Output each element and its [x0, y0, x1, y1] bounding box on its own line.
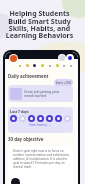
- staticText: View history ⌄: [29, 123, 52, 127]
- staticText: Helping Students Build Smart Study Skill…: [0, 9, 82, 40]
- staticText: 30 day objective: [8, 136, 44, 142]
- button[interactable]: Earn +100: [54, 79, 73, 86]
- button[interactable]: [37, 115, 44, 122]
- staticText: Earn +100: [56, 81, 71, 85]
- button[interactable]: [19, 115, 26, 122]
- staticText: Devin's goal right now is to focus on nu…: [13, 149, 70, 169]
- button[interactable]: [28, 115, 35, 122]
- staticText: Last 7 days: [10, 109, 29, 114]
- button[interactable]: View history ⌄: [10, 123, 71, 127]
- button[interactable]: [55, 115, 62, 122]
- staticText: Great job getting your streak started: [24, 89, 60, 98]
- staticText: Daily achievement: [8, 73, 49, 79]
- button[interactable]: [64, 115, 71, 122]
- button[interactable]: [10, 115, 17, 122]
- button[interactable]: [46, 115, 53, 122]
- button[interactable]: Great job getting your streak started: [8, 85, 73, 102]
